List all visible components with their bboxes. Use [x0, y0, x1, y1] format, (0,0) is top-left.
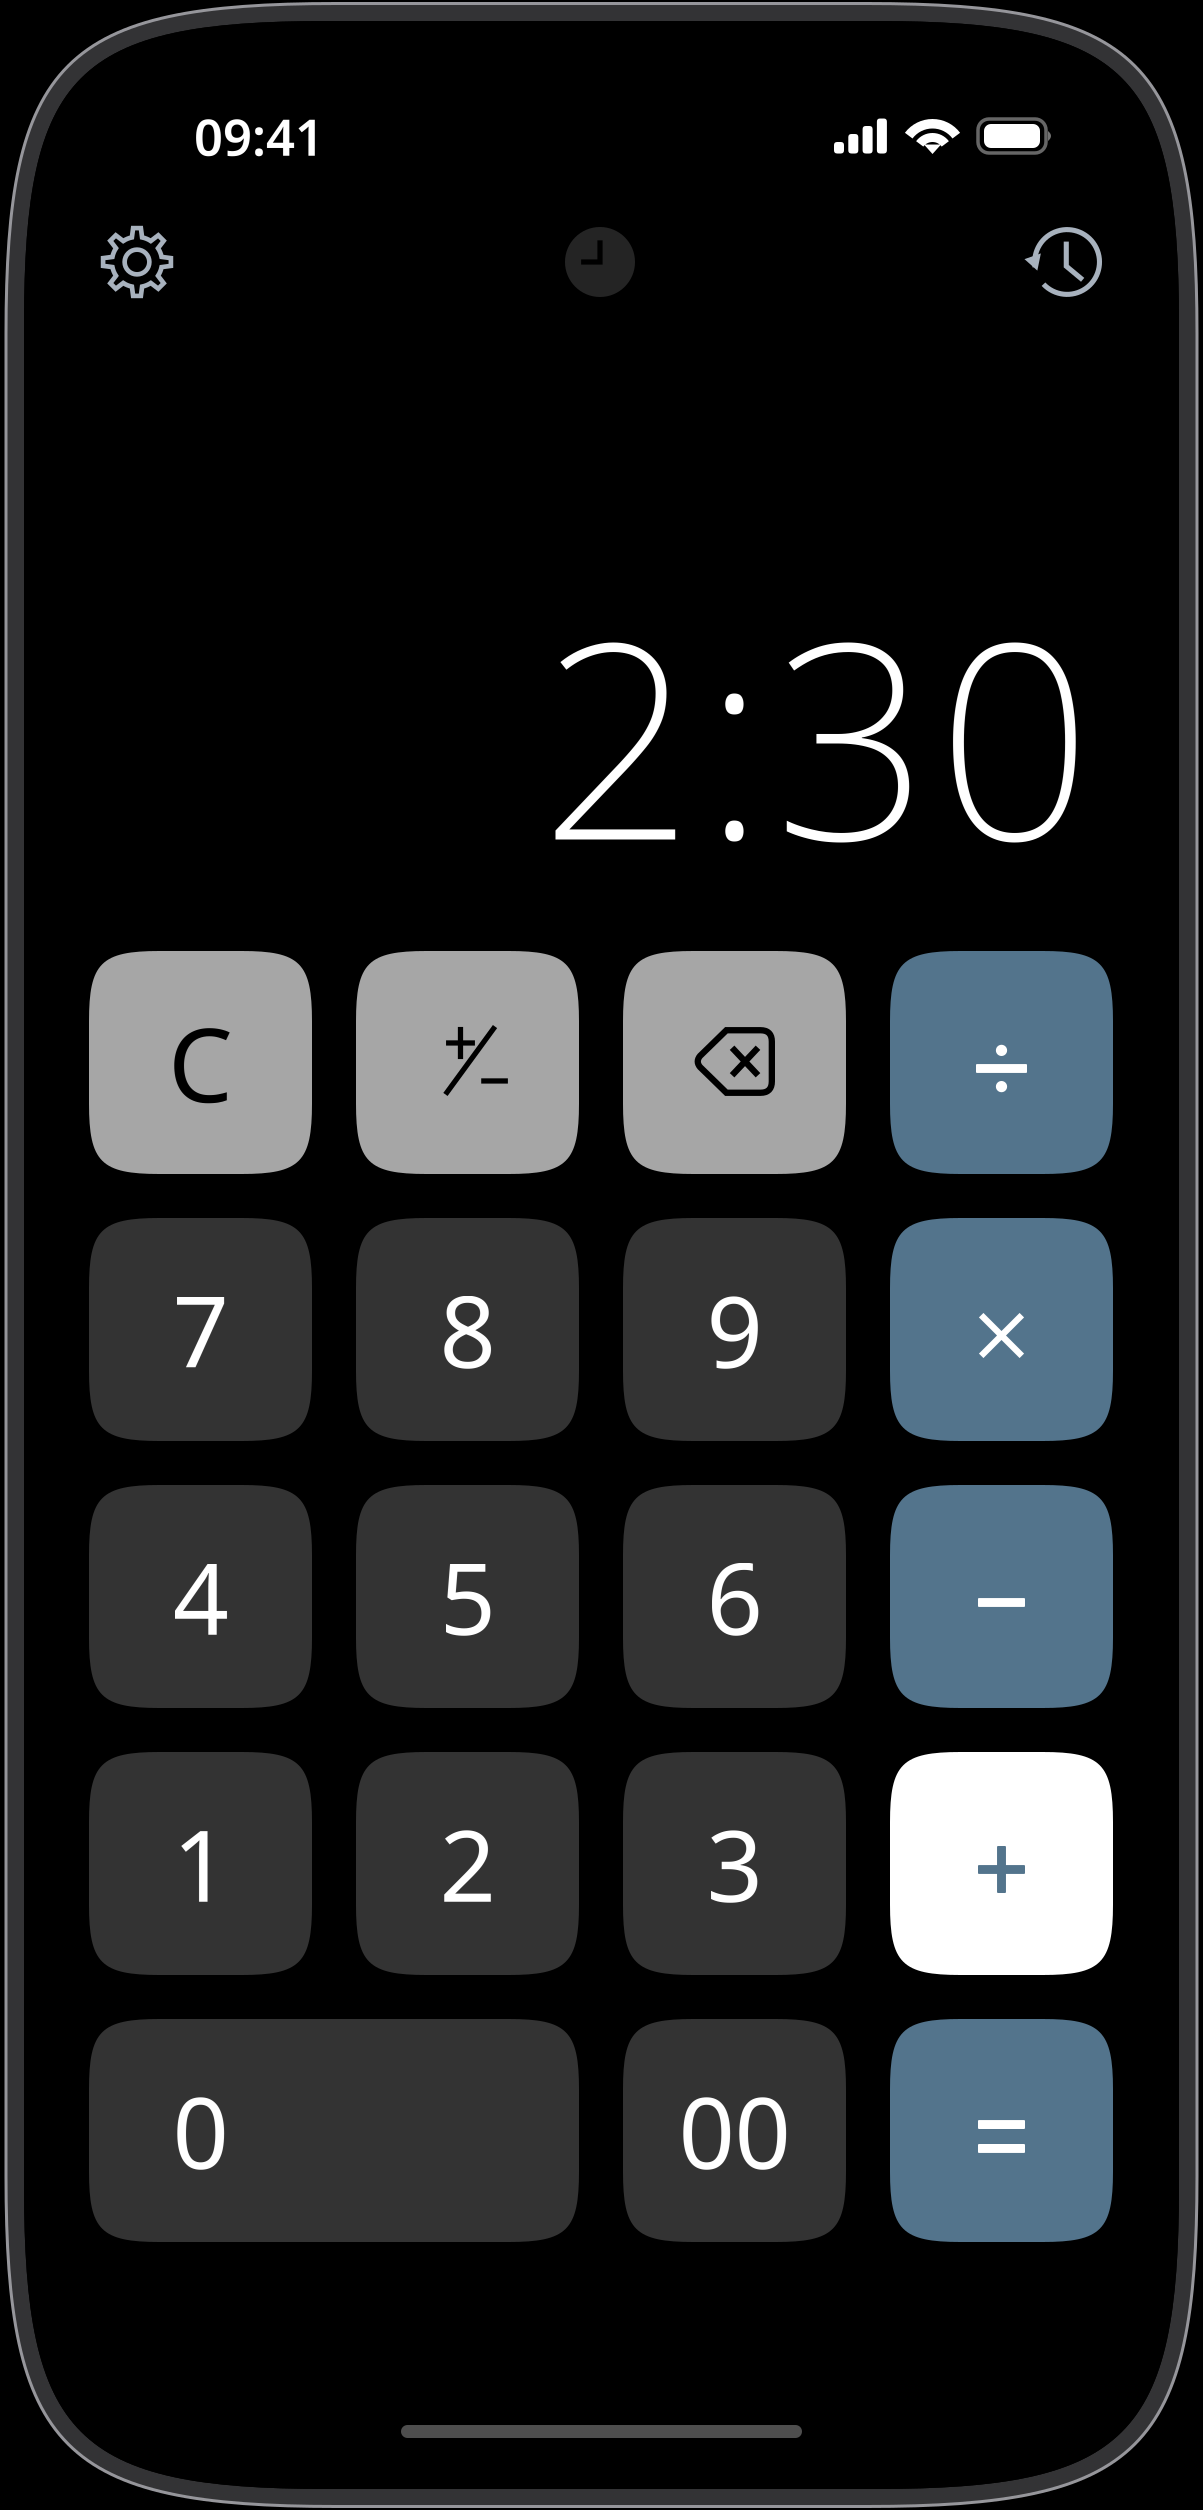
button[interactable]: Minus — [890, 1485, 1113, 1708]
button[interactable]: Plus minus — [356, 951, 579, 1174]
button[interactable]: 8 — [356, 1218, 579, 1441]
staticText: 2:30 — [540, 553, 1092, 915]
staticText: 0 — [172, 2065, 228, 2196]
staticText: 7 — [172, 1264, 228, 1395]
staticText: 2 — [439, 1798, 495, 1929]
staticText: 1 — [172, 1798, 228, 1929]
button[interactable]: Settings — [81, 206, 193, 318]
staticText: 6 — [706, 1531, 762, 1662]
staticText: 00 — [678, 2065, 790, 2196]
button[interactable]: 1 — [89, 1752, 312, 1975]
button[interactable]: 9 — [623, 1218, 846, 1441]
staticText: 5 — [439, 1531, 495, 1662]
button[interactable]: Equals — [890, 2019, 1113, 2242]
button[interactable]: C — [89, 951, 312, 1174]
button[interactable]: 6 — [623, 1485, 846, 1708]
staticText: 3 — [706, 1798, 762, 1929]
staticText: 4 — [172, 1531, 228, 1662]
button[interactable]: History — [1007, 206, 1119, 318]
button[interactable]: Divide — [890, 951, 1113, 1174]
staticText: 8 — [439, 1264, 495, 1395]
staticText: 09:41 — [194, 102, 324, 170]
button[interactable]: 7 — [89, 1218, 312, 1441]
button[interactable]: 2 — [356, 1752, 579, 1975]
button[interactable]: 5 — [356, 1485, 579, 1708]
button[interactable]: 3 — [623, 1752, 846, 1975]
button[interactable]: 0 — [89, 2019, 579, 2242]
staticText: 9 — [706, 1264, 762, 1395]
button[interactable]: 4 — [89, 1485, 312, 1708]
button[interactable]: 00 — [623, 2019, 846, 2242]
button[interactable]: Multiply — [890, 1218, 1113, 1441]
button[interactable]: Delete — [623, 951, 846, 1174]
staticText: C — [168, 994, 233, 1131]
button[interactable]: Plus — [890, 1752, 1113, 1975]
